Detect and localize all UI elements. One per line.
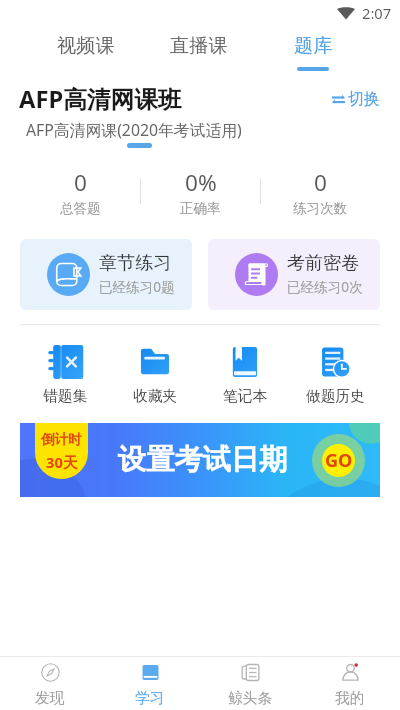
staticText: 已经练习0题 <box>99 278 175 297</box>
staticText: 收藏夹 <box>133 387 178 406</box>
button[interactable]: 章节练习 <box>20 239 192 310</box>
staticText: 章节练习 <box>99 252 172 275</box>
staticText: 设置考试日期 <box>118 442 288 478</box>
button[interactable]: 收藏夹 <box>110 343 200 406</box>
button[interactable]: 笔记本 <box>200 343 290 406</box>
staticText: 练习次数 <box>293 200 348 215</box>
staticText: 我的 <box>335 689 365 708</box>
staticText: GO <box>325 448 353 473</box>
staticText: 笔记本 <box>223 387 268 406</box>
staticText: 切换 <box>348 89 380 109</box>
staticText: 0% <box>185 167 217 198</box>
staticText: 0 <box>74 167 87 198</box>
staticText: 发现 <box>35 689 65 708</box>
staticText: 已经练习0次 <box>287 278 363 297</box>
staticText: 直播课 <box>170 34 228 58</box>
staticText: 0 <box>314 167 327 198</box>
staticText: 鲸头条 <box>228 689 273 708</box>
staticText: 做题历史 <box>306 387 365 406</box>
staticText: AFP高清网课班 <box>19 83 182 115</box>
button[interactable]: 倒计时 <box>20 423 380 497</box>
button[interactable]: 学习 <box>100 657 200 710</box>
staticText: 学习 <box>135 689 165 708</box>
button[interactable]: 直播课 <box>142 26 256 73</box>
staticText: 视频课 <box>57 34 115 58</box>
button[interactable]: 做题历史 <box>290 343 380 406</box>
staticText: 考前密卷 <box>287 252 360 275</box>
staticText: 30天 <box>46 452 78 472</box>
button[interactable]: 0 <box>261 167 380 215</box>
staticText: 正确率 <box>180 200 221 215</box>
button[interactable]: 考前密卷 <box>208 239 380 310</box>
button[interactable]: 0% <box>141 167 260 215</box>
button[interactable]: 视频课 <box>29 26 142 73</box>
staticText: 总答题 <box>60 200 101 215</box>
button[interactable]: 我的 <box>300 657 400 710</box>
staticText: 2:07 <box>362 3 392 23</box>
button[interactable]: 题库 <box>256 26 370 73</box>
button[interactable]: 切换 <box>326 85 386 113</box>
button[interactable]: 0 <box>20 167 140 215</box>
button[interactable]: 鲸头条 <box>200 657 300 710</box>
staticText: AFP高清网课(2020年考试适用) <box>26 119 242 141</box>
staticText: 错题集 <box>43 387 88 406</box>
button[interactable]: 错题集 <box>20 343 110 406</box>
staticText: 题库 <box>294 34 333 58</box>
staticText: 倒计时 <box>41 431 82 448</box>
button[interactable]: 发现 <box>0 657 100 710</box>
